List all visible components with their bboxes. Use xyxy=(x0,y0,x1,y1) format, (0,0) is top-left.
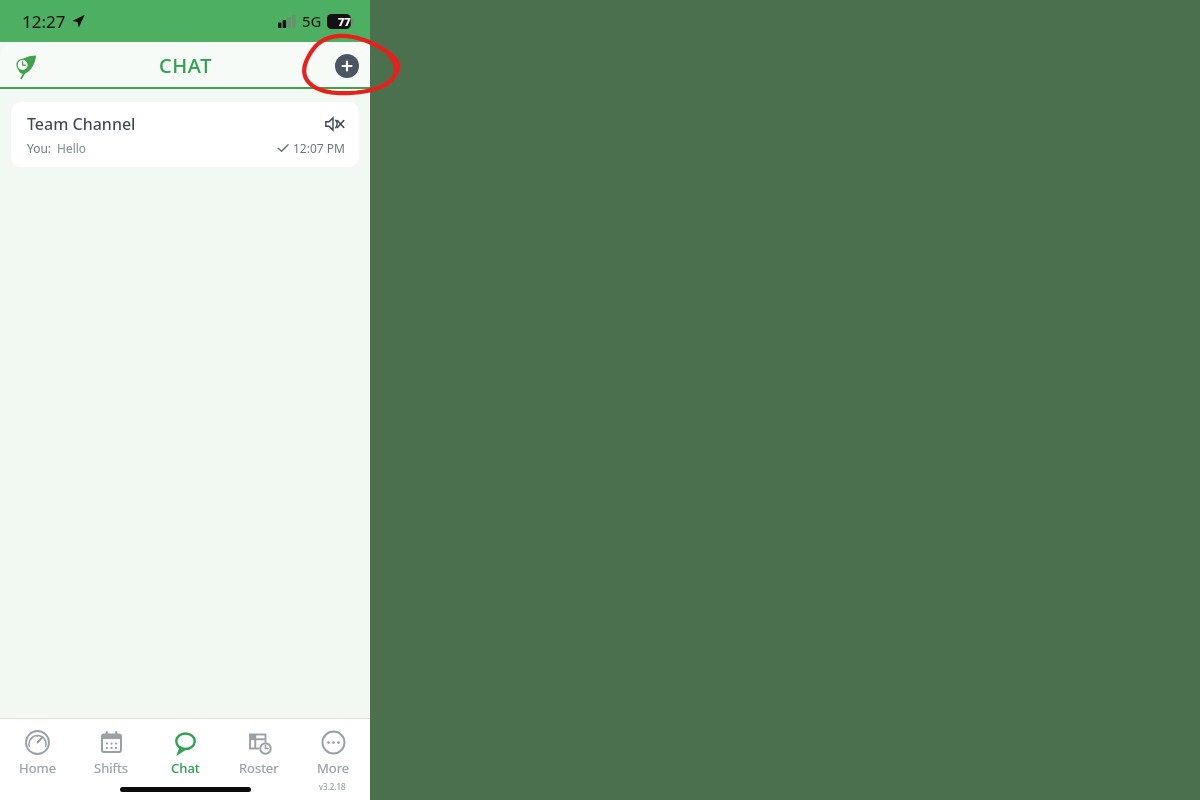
staticText: 5G xyxy=(302,11,322,31)
staticText: Shifts xyxy=(94,759,128,777)
staticText: Hello xyxy=(57,140,87,156)
staticText: Roster xyxy=(239,759,279,777)
staticText: 77 xyxy=(338,14,351,29)
staticText: v3.2.18 xyxy=(319,781,346,792)
button[interactable]: Team Channel xyxy=(11,102,359,167)
staticText: You: xyxy=(27,140,52,156)
staticText: Home xyxy=(19,759,56,777)
staticText: 12:27 xyxy=(22,10,66,33)
button[interactable]: App logo xyxy=(10,50,42,82)
staticText: 12:07 PM xyxy=(293,140,345,156)
button[interactable]: Home xyxy=(0,727,74,780)
button[interactable]: New chat xyxy=(335,54,359,78)
other: Muted xyxy=(325,116,345,132)
button[interactable]: Chat xyxy=(148,727,222,780)
staticText: Team Channel xyxy=(27,113,136,135)
button[interactable]: Roster xyxy=(222,727,296,780)
button[interactable]: More xyxy=(296,727,370,780)
staticText: More xyxy=(317,759,350,777)
staticText: Chat xyxy=(171,759,200,777)
button[interactable]: Shifts xyxy=(74,727,148,780)
staticText: CHAT xyxy=(159,52,212,79)
